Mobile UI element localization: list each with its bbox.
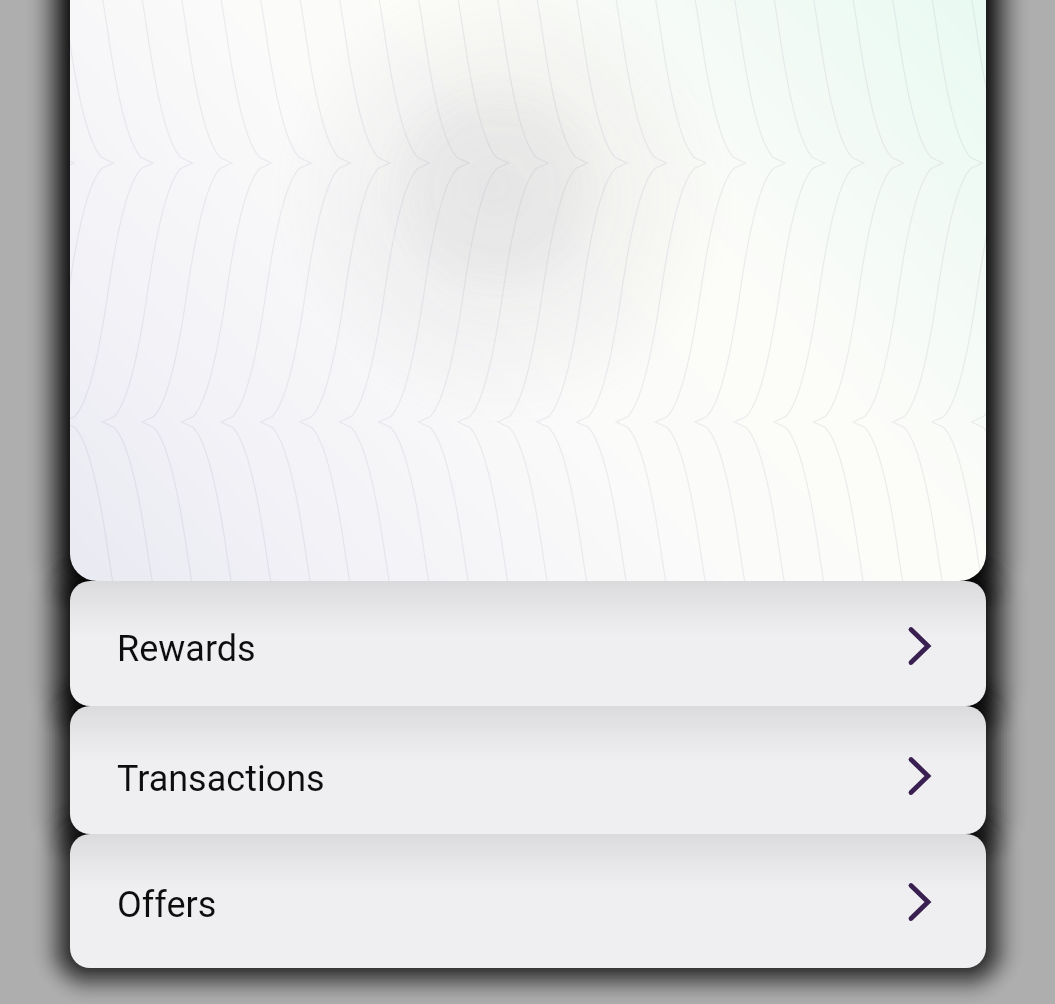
other: Open Offers (908, 882, 932, 922)
staticText: Rewards (117, 628, 256, 670)
staticText: Transactions (117, 758, 325, 800)
button[interactable]: Rewards (70, 581, 986, 706)
other: Open Rewards (908, 626, 932, 666)
staticText: Offers (117, 884, 217, 926)
button[interactable]: Offers (70, 834, 986, 968)
button[interactable]: Transactions (70, 706, 986, 834)
other: Open Transactions (908, 756, 932, 796)
